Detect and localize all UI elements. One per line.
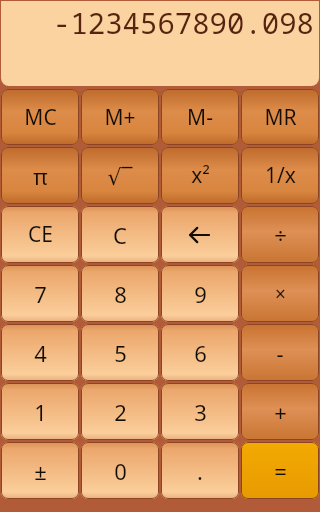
button[interactable]: + xyxy=(241,383,319,440)
staticText: = xyxy=(274,456,287,486)
button[interactable]: 2 xyxy=(81,383,159,440)
staticText: ± xyxy=(34,456,47,486)
staticText: MC xyxy=(24,103,57,132)
staticText: M+ xyxy=(104,103,136,132)
button[interactable]: × xyxy=(241,265,319,322)
staticText: 1/x xyxy=(265,161,296,190)
button[interactable]: CE xyxy=(1,206,79,263)
button[interactable]: 7 xyxy=(1,265,79,322)
button[interactable]: M- xyxy=(161,89,239,145)
staticText: π xyxy=(33,161,48,191)
button[interactable]: 8 xyxy=(81,265,159,322)
button[interactable]: 5 xyxy=(81,324,159,381)
button[interactable]: 1/x xyxy=(241,147,319,204)
button[interactable]: x² xyxy=(161,147,239,204)
button[interactable]: . xyxy=(161,442,239,499)
button[interactable]: √‾ xyxy=(81,147,159,204)
staticText: 6 xyxy=(194,338,207,368)
staticText: -1234567890.098 xyxy=(52,3,314,42)
staticText: x² xyxy=(191,161,210,190)
button[interactable]: 1 xyxy=(1,383,79,440)
button[interactable]: Backspace xyxy=(161,206,239,263)
button[interactable]: C xyxy=(81,206,159,263)
staticText: 1 xyxy=(34,397,47,427)
button[interactable]: 3 xyxy=(161,383,239,440)
staticText: 8 xyxy=(114,279,127,309)
staticText: C xyxy=(113,220,127,250)
button[interactable]: 9 xyxy=(161,265,239,322)
staticText: ÷ xyxy=(274,220,287,250)
button[interactable]: M+ xyxy=(81,89,159,145)
staticText: 3 xyxy=(194,397,207,427)
staticText: 9 xyxy=(194,279,207,309)
staticText: MR xyxy=(264,103,297,132)
button[interactable]: ± xyxy=(1,442,79,499)
staticText: 7 xyxy=(34,279,47,309)
staticText: √‾ xyxy=(107,161,133,191)
button[interactable]: = xyxy=(241,442,319,499)
staticText: + xyxy=(274,397,287,427)
staticText: 2 xyxy=(114,397,127,427)
button[interactable]: MR xyxy=(241,89,319,145)
staticText: . xyxy=(197,456,203,486)
staticText: - xyxy=(276,338,284,368)
staticText: 4 xyxy=(34,338,47,368)
button[interactable]: - xyxy=(241,324,319,381)
staticText: CE xyxy=(28,220,53,249)
button[interactable]: 6 xyxy=(161,324,239,381)
button[interactable]: MC xyxy=(1,89,79,145)
staticText: × xyxy=(275,281,286,307)
button[interactable]: 4 xyxy=(1,324,79,381)
button[interactable]: 0 xyxy=(81,442,159,499)
staticText: 5 xyxy=(114,338,127,368)
staticText: 0 xyxy=(114,456,127,486)
button[interactable]: π xyxy=(1,147,79,204)
button[interactable]: ÷ xyxy=(241,206,319,263)
staticText: M- xyxy=(187,103,213,132)
